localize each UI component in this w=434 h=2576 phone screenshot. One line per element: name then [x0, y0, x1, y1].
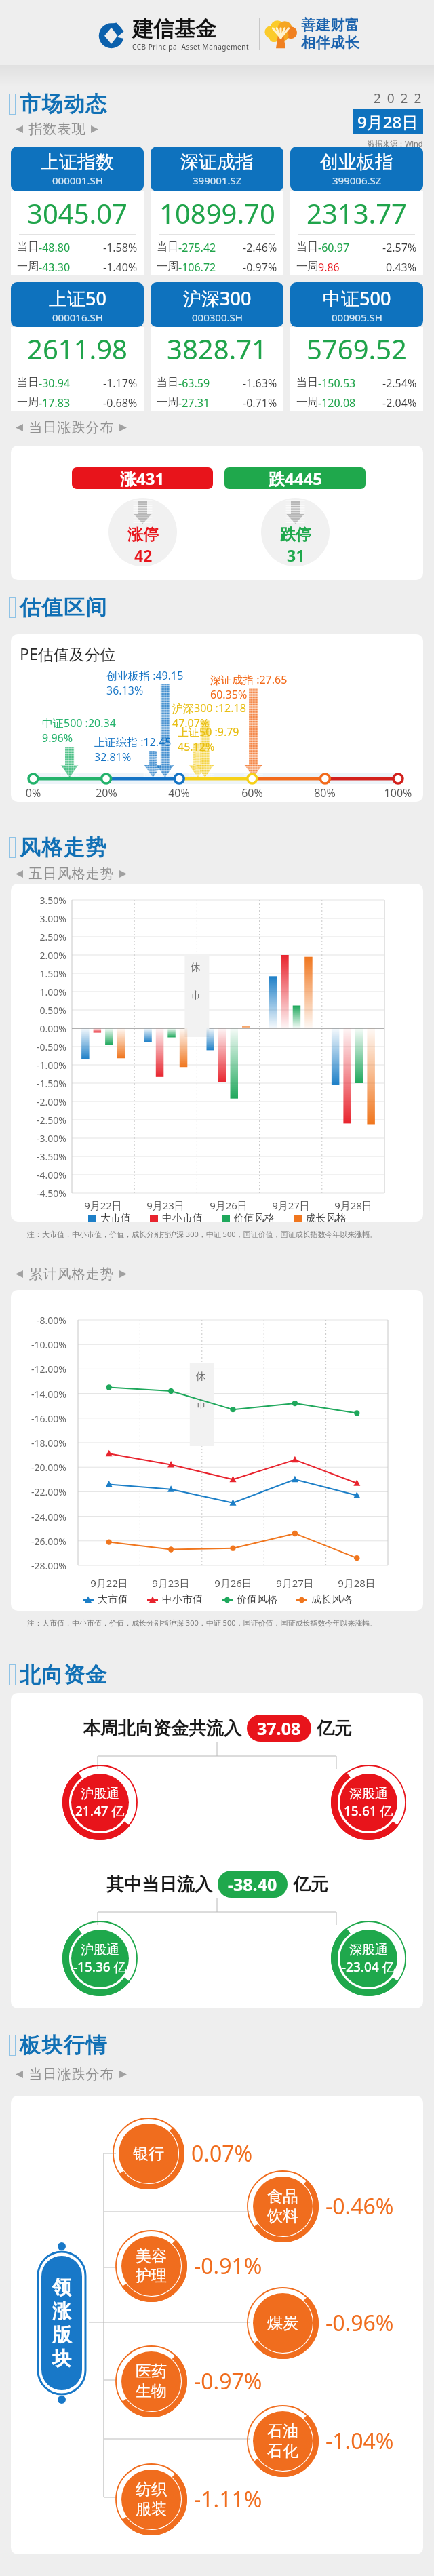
staticText: 深股通 — [349, 1786, 388, 1802]
staticText: -27.31 — [178, 395, 210, 410]
staticText: 9月22日 — [79, 1576, 140, 1590]
staticText: -18.00% — [16, 1437, 66, 1449]
staticText: 相伴成长 — [301, 34, 359, 52]
staticText: 399006.SZ — [332, 174, 382, 187]
staticText: 3.50% — [22, 894, 66, 907]
staticText: -0.96% — [325, 2308, 394, 2338]
staticText: 建信基金 — [132, 16, 216, 42]
staticText: -1.58% — [103, 240, 138, 255]
staticText: 37.08 — [257, 1717, 301, 1740]
staticText: 当日 — [157, 240, 178, 254]
button[interactable]: 深证成指 — [151, 147, 283, 275]
button[interactable]: 中证500 — [290, 282, 423, 411]
staticText: 80% — [304, 785, 345, 800]
staticText: 生物 — [136, 2381, 167, 2401]
button[interactable]: 银行 — [113, 2118, 184, 2189]
staticText: -8.00% — [16, 1314, 66, 1327]
staticText: 3045.07 — [27, 195, 127, 231]
staticText: -150.53 — [318, 376, 356, 391]
staticText: 3828.71 — [167, 330, 267, 367]
button[interactable]: 医药 — [115, 2345, 187, 2417]
staticText: 风格走势 — [19, 834, 107, 861]
staticText: 沪股通 — [81, 1786, 119, 1802]
staticText: 护理 — [136, 2266, 167, 2286]
button[interactable]: 涨431 — [72, 467, 213, 489]
staticText: 数据来源：Wind — [368, 138, 423, 149]
staticText: -3.50% — [22, 1150, 66, 1163]
staticText: 当日涨跌分布 — [28, 419, 114, 436]
button[interactable]: 纺织 — [115, 2463, 187, 2535]
staticText: 9月27日 — [260, 1198, 321, 1212]
staticText: 善建财富 — [301, 16, 359, 34]
staticText: -14.00% — [16, 1388, 66, 1401]
staticText: 本周北向资金共流入 — [83, 1717, 241, 1740]
staticText: 五日风格走势 — [28, 865, 114, 882]
button[interactable]: 上证50 — [11, 282, 144, 411]
button[interactable]: 领 — [41, 2256, 82, 2390]
staticText: -0.68% — [103, 395, 138, 410]
staticText: 45.12% — [178, 739, 215, 754]
staticText: 领 — [52, 2276, 71, 2299]
button[interactable]: 深股通 — [331, 1765, 406, 1840]
button[interactable]: 沪股通 — [62, 1765, 138, 1840]
staticText: 一周 — [17, 260, 39, 273]
staticText: 亿元 — [293, 1873, 328, 1896]
staticText: -23.04 亿 — [342, 1958, 395, 1976]
staticText: 中证500 :20.34 — [42, 716, 116, 730]
staticText: -22.00% — [16, 1485, 66, 1498]
staticText: -16.00% — [16, 1412, 66, 1425]
staticText: 当日 — [17, 240, 39, 254]
button[interactable]: 煤炭 — [247, 2287, 319, 2359]
staticText: 沪深300 — [183, 286, 252, 311]
staticText: 市场动态 — [19, 91, 107, 117]
staticText: 5769.52 — [307, 330, 407, 367]
staticText: -48.80 — [39, 240, 71, 255]
staticText: -2.50% — [22, 1114, 66, 1127]
staticText: -20.00% — [16, 1461, 66, 1474]
staticText: 2611.98 — [27, 330, 127, 367]
staticText: 上证指数 — [41, 151, 114, 174]
staticText: -0.50% — [22, 1040, 66, 1053]
staticText: 跌4445 — [269, 467, 322, 489]
staticText: 中小市值 — [162, 1593, 203, 1606]
staticText: -10.00% — [16, 1338, 66, 1351]
staticText: 涨停 — [127, 525, 159, 545]
staticText: -0.71% — [243, 395, 277, 410]
button[interactable]: 食品 — [247, 2170, 319, 2242]
staticText: -1.63% — [243, 376, 277, 391]
staticText: 当日 — [296, 376, 318, 389]
staticText: 休 — [196, 1370, 206, 1383]
staticText: 一周 — [17, 395, 39, 409]
button[interactable]: 创业板指 — [290, 147, 423, 275]
button[interactable]: 跌4445 — [224, 467, 366, 489]
staticText: 涨 — [52, 2299, 71, 2323]
staticText: -3.00% — [22, 1132, 66, 1145]
staticText: 0% — [13, 785, 54, 800]
staticText: 成长风格 — [311, 1593, 352, 1606]
button[interactable]: 美容 — [115, 2230, 187, 2302]
button[interactable]: 深股通 — [331, 1921, 406, 1996]
staticText: 9月26日 — [198, 1198, 259, 1212]
staticText: 0.43% — [386, 260, 417, 275]
staticText: -28.00% — [16, 1559, 66, 1572]
staticText: 31 — [287, 545, 305, 566]
staticText: 399001.SZ — [193, 174, 242, 187]
button[interactable]: 沪股通 — [62, 1921, 138, 1996]
button[interactable]: 沪深300 — [151, 282, 283, 411]
staticText: 60.35% — [210, 687, 248, 702]
staticText: 9月23日 — [135, 1198, 196, 1212]
staticText: 当日 — [296, 240, 318, 254]
staticText: 一周 — [157, 395, 178, 409]
staticText: -4.50% — [22, 1187, 66, 1200]
staticText: -2.46% — [243, 240, 277, 255]
staticText: 休 — [191, 961, 201, 974]
staticText: 一周 — [296, 260, 318, 273]
staticText: 9月26日 — [203, 1576, 264, 1590]
staticText: 上证50 — [49, 286, 106, 311]
staticText: -63.59 — [178, 376, 210, 391]
button[interactable]: 上证指数 — [11, 147, 144, 275]
button[interactable]: 石油 — [247, 2405, 319, 2477]
staticText: -0.46% — [325, 2191, 394, 2221]
staticText: 北向资金 — [19, 1662, 107, 1688]
staticText: 饮料 — [267, 2206, 298, 2226]
